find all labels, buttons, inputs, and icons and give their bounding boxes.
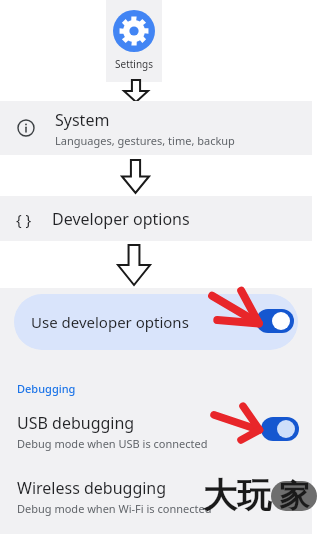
staticText: { }: [16, 209, 32, 229]
button[interactable]: USB debugging: [0, 405, 312, 457]
staticText: 大玩: [203, 474, 271, 517]
button[interactable]: Settings app: [106, 0, 162, 82]
button[interactable]: USB debugging toggle: [261, 417, 299, 441]
staticText: Debug mode when Wi-Fi is connected: [17, 501, 212, 516]
staticText: Wireless debugging: [17, 477, 167, 499]
staticText: USB debugging: [17, 412, 135, 434]
staticText: Languages, gestures, time, backup: [55, 133, 235, 148]
staticText: Debugging: [17, 381, 76, 396]
staticText: Settings: [115, 57, 154, 71]
button[interactable]: Wireless debugging: [0, 473, 312, 523]
staticText: Developer options: [52, 208, 190, 230]
staticText: 家: [279, 477, 309, 515]
button[interactable]: Use developer options toggle: [256, 309, 294, 333]
button[interactable]: System: [0, 101, 312, 155]
staticText: Use developer options: [31, 312, 189, 332]
button[interactable]: { }: [0, 196, 312, 241]
button[interactable]: Use developer options: [14, 294, 298, 350]
staticText: Debug mode when USB is connected: [17, 436, 208, 451]
staticText: System: [55, 109, 110, 131]
